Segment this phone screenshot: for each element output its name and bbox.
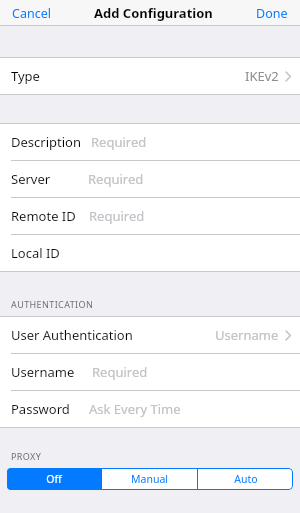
staticText: IKEv2 xyxy=(245,67,279,85)
button[interactable]: Off xyxy=(7,468,101,490)
staticText: Manual xyxy=(131,472,168,486)
staticText: Description xyxy=(11,133,81,151)
staticText: Required xyxy=(91,133,147,151)
staticText: Username xyxy=(11,363,75,381)
button[interactable]: User Authentication xyxy=(0,317,300,353)
staticText: Required xyxy=(88,170,144,188)
button[interactable]: Auto xyxy=(198,468,293,490)
staticText: Off xyxy=(46,472,62,486)
staticText: Cancel xyxy=(12,5,51,22)
button[interactable]: Password xyxy=(0,391,300,427)
staticText: Ask Every Time xyxy=(89,400,181,418)
staticText: Local ID xyxy=(11,244,60,262)
staticText: Add Configuration xyxy=(94,4,213,22)
staticText: User Authentication xyxy=(11,326,133,344)
button[interactable]: Local ID xyxy=(0,235,300,271)
button[interactable]: Server xyxy=(0,161,300,197)
staticText: Done xyxy=(256,5,288,22)
staticText: Required xyxy=(89,207,145,225)
staticText: Type xyxy=(11,67,40,85)
staticText: Username xyxy=(215,326,279,344)
button[interactable]: Remote ID xyxy=(0,198,300,234)
button[interactable]: Username xyxy=(0,354,300,390)
staticText: Server xyxy=(11,170,51,188)
staticText: Remote ID xyxy=(11,207,76,225)
staticText: AUTHENTICATION xyxy=(11,298,94,310)
button[interactable]: Description xyxy=(0,124,300,160)
button[interactable]: Cancel xyxy=(9,1,54,26)
button[interactable]: Done xyxy=(253,1,291,26)
button[interactable]: Type xyxy=(0,58,300,94)
button[interactable]: Manual xyxy=(102,468,197,490)
staticText: Required xyxy=(92,363,148,381)
staticText: Password xyxy=(11,400,70,418)
staticText: Auto xyxy=(234,472,258,486)
staticText: PROXY xyxy=(11,450,42,462)
